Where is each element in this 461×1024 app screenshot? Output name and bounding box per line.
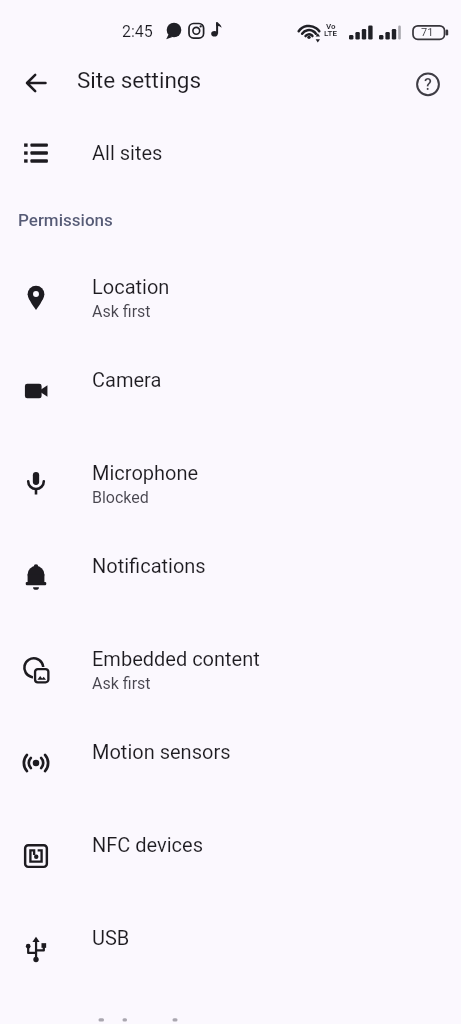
staticText: Ask first	[92, 674, 151, 693]
staticText: USB	[92, 926, 130, 949]
button[interactable]	[0, 996, 461, 1024]
staticText: Location	[92, 275, 170, 298]
staticText: ?	[424, 75, 432, 94]
staticText: All sites	[92, 141, 163, 164]
staticText: NFC devices	[92, 833, 204, 856]
staticText: Microphone	[92, 461, 199, 484]
staticText: Vo	[326, 22, 336, 31]
staticText: Camera	[92, 368, 162, 391]
button[interactable]: Location	[0, 252, 461, 345]
staticText: Permissions	[18, 210, 113, 230]
staticText: Notifications	[92, 554, 206, 577]
staticText: Site settings	[77, 67, 202, 93]
button[interactable]: Microphone	[0, 438, 461, 531]
button[interactable]: Notifications	[0, 531, 461, 624]
staticText: Blocked	[92, 488, 149, 507]
staticText: Embedded content	[92, 647, 260, 670]
staticText: 71	[421, 26, 434, 39]
staticText: Ask first	[92, 302, 151, 321]
staticText: Motion sensors	[92, 740, 231, 763]
button[interactable]: ?	[406, 62, 450, 106]
button[interactable]: NFC devices	[0, 810, 461, 903]
staticText: 2:45	[122, 22, 153, 41]
button[interactable]: Embedded content	[0, 624, 461, 717]
button[interactable]: All sites	[0, 106, 461, 199]
staticText: LTE	[324, 29, 337, 38]
button[interactable]: Motion sensors	[0, 717, 461, 810]
button[interactable]: Camera	[0, 345, 461, 438]
button[interactable]	[14, 61, 58, 105]
button[interactable]: USB	[0, 903, 461, 996]
